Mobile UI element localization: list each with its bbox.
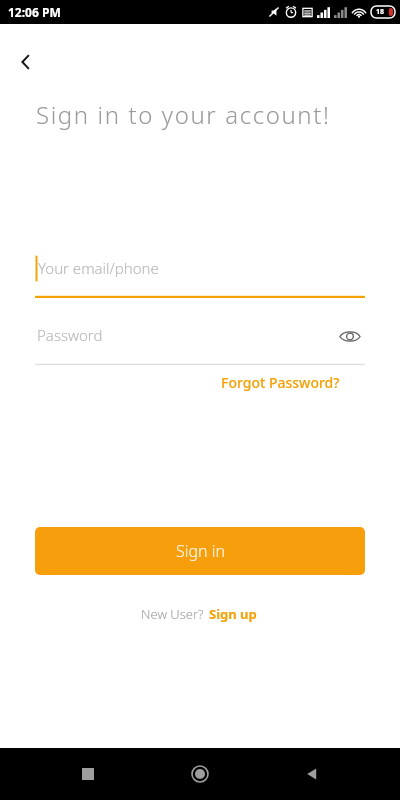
staticText: 12:06 PM <box>8 4 61 20</box>
staticText: Your email/phone <box>38 258 159 278</box>
staticText: Sign up <box>209 605 257 623</box>
staticText: Password <box>37 325 103 345</box>
staticText: Forgot Password? <box>221 373 340 392</box>
staticText: 18 <box>376 7 385 17</box>
button[interactable]: Forgot Password? <box>215 369 346 396</box>
staticText: Sign in to your account! <box>36 98 331 131</box>
button[interactable]: Your email/phone <box>35 252 365 298</box>
button[interactable]: Back <box>288 750 336 798</box>
staticText: Sign in <box>176 540 225 562</box>
button[interactable]: Password <box>35 319 365 365</box>
button[interactable]: Back <box>6 42 46 82</box>
button[interactable]: Sign in <box>35 527 365 575</box>
button[interactable]: Home <box>176 750 224 798</box>
button[interactable]: Recent apps <box>64 750 112 798</box>
button[interactable]: Show password <box>335 321 365 351</box>
staticText: New User? <box>141 605 207 623</box>
button[interactable]: Sign up <box>207 602 259 626</box>
